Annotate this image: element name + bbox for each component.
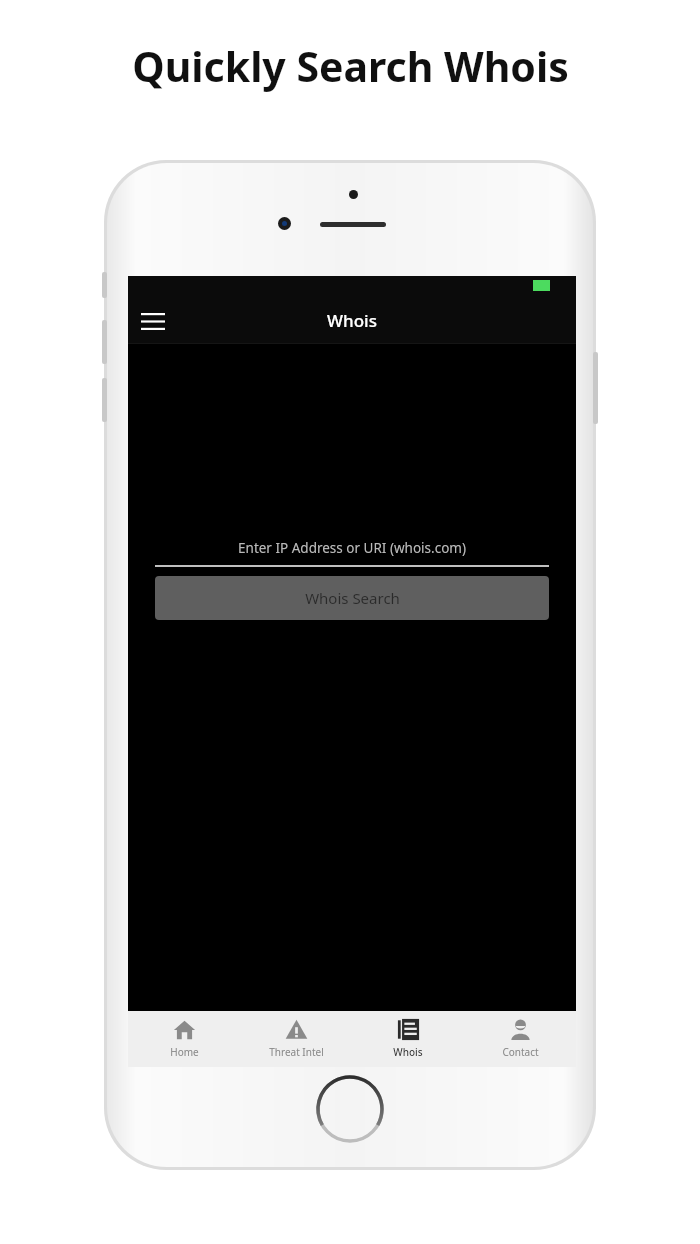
staticText: Contact [502, 1045, 539, 1059]
button[interactable]: Home [128, 1011, 240, 1067]
button[interactable]: Whois [352, 1011, 464, 1067]
staticText: Whois Search [305, 588, 400, 608]
staticText: Whois [327, 309, 377, 332]
button[interactable]: Whois Search [155, 576, 549, 620]
button[interactable]: Contact [464, 1011, 576, 1067]
staticText: Whois [393, 1045, 423, 1059]
button[interactable]: Threat Intel [240, 1011, 352, 1067]
staticText: Threat Intel [269, 1045, 324, 1059]
staticText: Quickly Search Whois [132, 38, 569, 94]
staticText: Enter IP Address or URI (whois.com) [238, 539, 466, 557]
staticText: Home [170, 1045, 199, 1059]
button[interactable]: Enter IP Address or URI (whois.com) [155, 531, 549, 565]
button[interactable]: Open navigation menu [132, 300, 174, 342]
